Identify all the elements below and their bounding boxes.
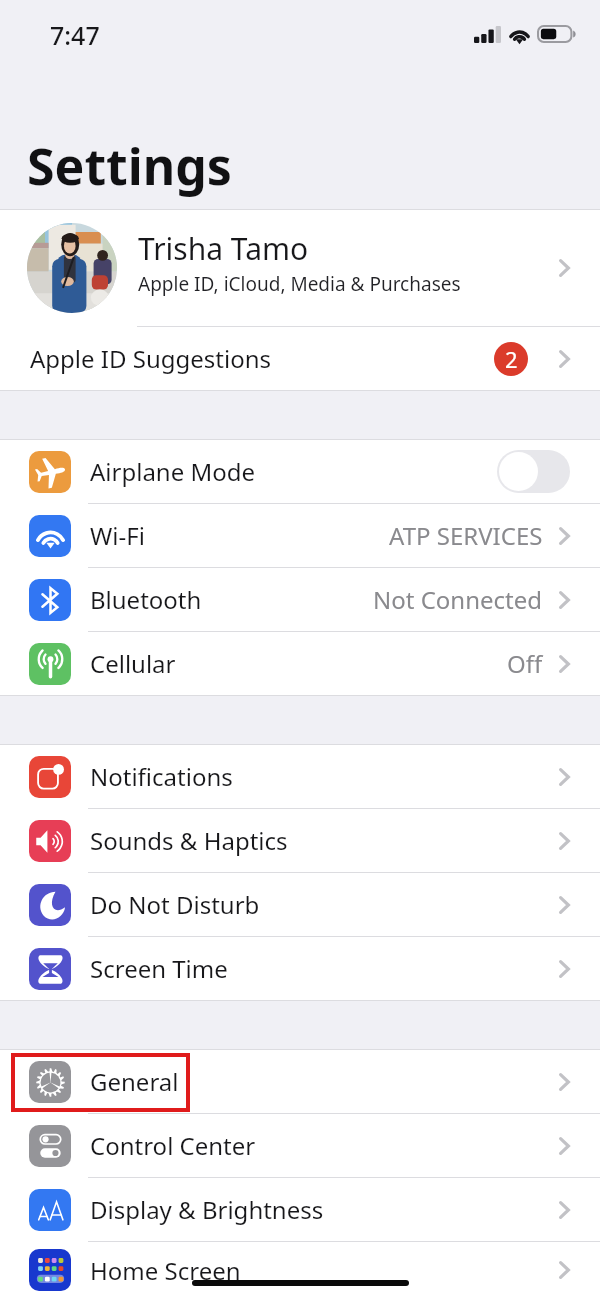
other: Open [559,768,570,786]
staticText: Apple ID, iCloud, Media & Purchases [138,271,461,297]
other: Open [559,896,570,914]
staticText: Cellular [90,647,507,680]
other: Open [559,259,570,277]
button[interactable]: General [0,1050,600,1113]
button[interactable]: Screen Time [0,937,600,1000]
other: Open [559,591,570,609]
staticText: 2 [505,344,518,374]
button[interactable]: Wi-Fi [0,504,600,567]
other: Open [559,527,570,545]
button[interactable]: Home Screen [0,1242,600,1298]
staticText: Not Connected [373,583,543,616]
staticText: Sounds & Haptics [90,824,559,857]
staticText: ATP SERVICES [389,519,543,552]
other: Open [559,1137,570,1155]
staticText: Display & Brightness [90,1193,559,1226]
button[interactable]: Trisha Tamo [0,210,600,326]
button[interactable]: Airplane Mode toggle [497,450,570,493]
staticText: Wi-Fi [90,519,389,552]
staticText: Do Not Disturb [90,888,559,921]
button[interactable]: Airplane Mode [0,440,600,503]
staticText: Off [507,647,543,680]
button[interactable]: Do Not Disturb [0,873,600,936]
other: Open [559,960,570,978]
staticText: Settings [27,132,232,200]
staticText: General [90,1065,559,1098]
button[interactable]: Apple ID Suggestions [0,327,600,390]
staticText: Screen Time [90,952,559,985]
button[interactable]: Sounds & Haptics [0,809,600,872]
staticText: 7:47 [50,18,100,52]
button[interactable]: Display & Brightness [0,1178,600,1241]
other: Open [559,1261,570,1279]
staticText: Control Center [90,1129,559,1162]
staticText: Airplane Mode [90,455,497,488]
other: Open [559,350,570,368]
button[interactable]: Cellular [0,632,600,695]
other: Open [559,1073,570,1091]
other: Open [559,655,570,673]
other: Open [559,1201,570,1219]
button[interactable]: Bluetooth [0,568,600,631]
staticText: Home Screen [90,1254,559,1287]
button[interactable]: Notifications [0,745,600,808]
other: Open [559,832,570,850]
staticText: Apple ID Suggestions [30,342,494,375]
staticText: Notifications [90,760,559,793]
button[interactable]: Control Center [0,1114,600,1177]
staticText: Bluetooth [90,583,373,616]
staticText: Trisha Tamo [138,228,309,269]
